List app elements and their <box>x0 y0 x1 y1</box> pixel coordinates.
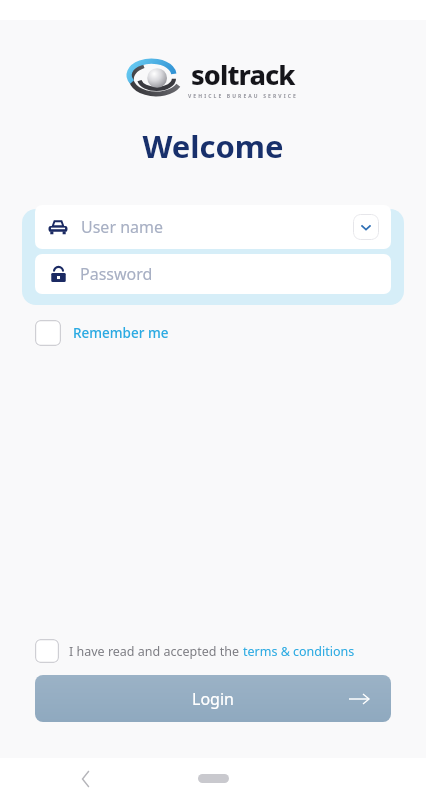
button[interactable]: User name <box>35 205 391 249</box>
staticText: Password <box>80 263 153 285</box>
staticText: Remember me <box>73 324 169 342</box>
staticText: Welcome <box>0 125 426 167</box>
staticText: VEHICLE BUREAU SERVICE <box>188 93 298 100</box>
button[interactable]: I have read and accepted the <box>35 639 412 663</box>
button[interactable]: Remember me <box>35 320 169 346</box>
staticText: Login <box>192 688 234 710</box>
button[interactable]: Back <box>72 765 100 793</box>
button[interactable]: Show user list <box>353 214 379 240</box>
other: User name <box>47 216 69 238</box>
button[interactable]: Home <box>198 774 229 783</box>
staticText: terms & conditions <box>243 643 355 660</box>
staticText: User name <box>81 216 353 238</box>
other: Password <box>49 265 68 284</box>
staticText: soltrack <box>191 56 295 93</box>
staticText: I have read and accepted the <box>69 643 243 660</box>
button[interactable]: Password <box>35 254 391 294</box>
button[interactable]: Login <box>35 675 391 722</box>
